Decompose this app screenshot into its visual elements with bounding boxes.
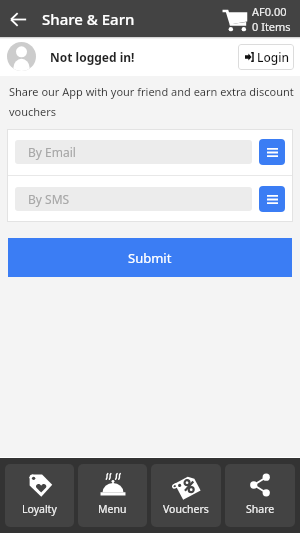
staticText: Menu — [98, 502, 127, 516]
button[interactable]: Vouchers — [151, 464, 221, 527]
button[interactable]: Menu — [78, 464, 147, 527]
button[interactable]: Back — [0, 1, 36, 37]
button[interactable]: By Email — [15, 140, 252, 164]
button[interactable]: Login — [238, 44, 294, 70]
staticText: Vouchers — [163, 502, 209, 516]
button[interactable]: Cart — [222, 4, 291, 34]
button[interactable]: By SMS — [15, 187, 252, 211]
staticText: Share our App with your friend and earn … — [9, 84, 298, 119]
button[interactable]: Share — [225, 464, 295, 527]
staticText: 0 Items — [252, 19, 291, 34]
staticText: By Email — [28, 144, 76, 160]
staticText: AF0.00 — [252, 4, 287, 19]
staticText: Loyalty — [22, 502, 57, 516]
staticText: By SMS — [28, 191, 70, 207]
staticText: Share & Earn — [42, 9, 135, 29]
button[interactable]: Submit — [8, 238, 292, 277]
staticText: Not logged in! — [50, 49, 135, 65]
staticText: Share — [246, 502, 275, 516]
staticText: Login — [257, 49, 289, 65]
staticText: Submit — [128, 249, 172, 267]
button[interactable]: Choose contacts — [259, 186, 285, 212]
button[interactable]: Loyalty — [5, 464, 74, 527]
button[interactable]: Choose contacts — [259, 139, 285, 165]
